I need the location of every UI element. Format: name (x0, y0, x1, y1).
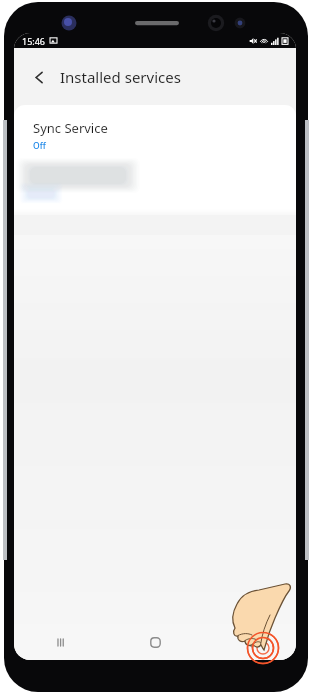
button[interactable]: Back (24, 62, 54, 92)
button[interactable]: Home (108, 624, 202, 660)
other: Tap back button (0, 0, 312, 700)
staticText: 15:46 (22, 35, 46, 47)
staticText: Installed services (60, 67, 181, 87)
staticText: Off (33, 140, 46, 152)
button[interactable] (14, 163, 296, 209)
button[interactable]: Sync Service (14, 105, 296, 163)
staticText: Sync Service (33, 119, 108, 137)
button[interactable]: Recent apps (14, 624, 108, 660)
button[interactable]: Back (202, 624, 296, 660)
